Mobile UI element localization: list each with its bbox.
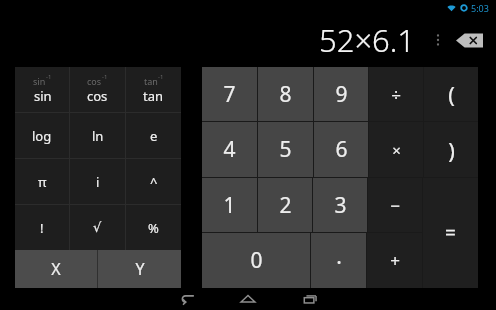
button[interactable]: cos <box>70 67 125 112</box>
button[interactable]: × <box>369 122 423 177</box>
staticText: ( <box>448 79 455 109</box>
staticText: e <box>150 127 158 145</box>
staticText: cos <box>87 75 102 87</box>
staticText: 5:03 <box>471 2 489 14</box>
staticText: X <box>51 258 61 280</box>
button[interactable]: Recent apps <box>299 288 323 310</box>
staticText: 0 <box>250 246 263 275</box>
button[interactable]: 9 <box>314 67 368 121</box>
button[interactable]: sin <box>15 67 69 112</box>
staticText: tan <box>144 75 158 87</box>
staticText: 7 <box>223 80 236 109</box>
staticText: tan <box>143 87 164 105</box>
button[interactable]: 4 <box>202 122 257 177</box>
button[interactable]: e <box>126 113 181 158</box>
button[interactable]: % <box>126 205 181 250</box>
button[interactable]: ) <box>424 122 478 177</box>
staticText: . <box>336 242 342 271</box>
button[interactable]: 2 <box>258 178 312 232</box>
button[interactable]: 0 <box>202 233 310 288</box>
staticText: 8 <box>279 80 292 109</box>
staticText: -1 <box>102 73 108 81</box>
staticText: 52×6.1 <box>319 19 416 61</box>
button[interactable]: i <box>70 159 125 204</box>
button[interactable]: More options <box>428 16 448 64</box>
button[interactable]: . <box>311 233 366 288</box>
button[interactable]: ^ <box>126 159 181 204</box>
button[interactable]: log <box>15 113 69 158</box>
staticText: sin <box>34 87 52 105</box>
staticText: 5 <box>279 135 292 164</box>
staticText: √ <box>93 220 102 235</box>
staticText: -1 <box>46 73 52 81</box>
button[interactable]: Back <box>176 288 200 310</box>
staticText: ln <box>92 127 104 145</box>
button[interactable]: Delete <box>448 16 490 64</box>
button[interactable]: ln <box>70 113 125 158</box>
button[interactable]: √ <box>70 205 125 250</box>
button[interactable]: Home <box>236 288 260 310</box>
staticText: 1 <box>223 191 236 220</box>
button[interactable]: ÷ <box>369 67 423 121</box>
staticText: − <box>390 194 400 217</box>
staticText: 9 <box>335 80 348 109</box>
staticText: = <box>445 220 456 246</box>
button[interactable]: X <box>15 250 97 288</box>
button[interactable]: ! <box>15 205 69 250</box>
button[interactable]: 8 <box>258 67 313 121</box>
staticText: × <box>392 140 401 160</box>
button[interactable]: 7 <box>202 67 257 121</box>
button[interactable]: − <box>368 178 422 232</box>
staticText: Y <box>135 258 145 280</box>
button[interactable]: 5 <box>258 122 313 177</box>
staticText: 4 <box>223 135 236 164</box>
staticText: % <box>148 219 159 237</box>
staticText: 3 <box>334 191 347 220</box>
button[interactable]: π <box>15 159 69 204</box>
button[interactable]: + <box>367 233 422 288</box>
button[interactable]: 1 <box>202 178 257 232</box>
staticText: log <box>32 127 52 145</box>
staticText: π <box>38 173 47 191</box>
staticText: ÷ <box>391 83 401 106</box>
staticText: -1 <box>158 73 164 81</box>
button[interactable]: Y <box>98 250 181 288</box>
staticText: cos <box>87 87 108 105</box>
staticText: sin <box>33 75 46 87</box>
button[interactable]: = <box>423 178 478 288</box>
staticText: i <box>96 173 100 191</box>
staticText: 2 <box>279 191 292 220</box>
staticText: 6 <box>335 135 348 164</box>
button[interactable]: tan <box>126 67 181 112</box>
staticText: + <box>390 249 400 272</box>
staticText: ! <box>40 219 44 237</box>
button[interactable]: 6 <box>314 122 368 177</box>
staticText: ^ <box>150 173 158 191</box>
button[interactable]: 3 <box>313 178 367 232</box>
button[interactable]: ( <box>424 67 478 121</box>
staticText: ) <box>448 135 455 165</box>
